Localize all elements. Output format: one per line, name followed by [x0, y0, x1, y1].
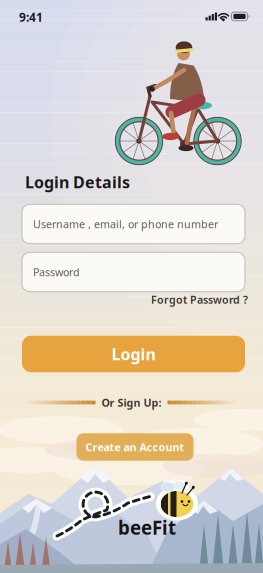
staticText: Password — [33, 265, 80, 279]
staticText: Login Details — [25, 171, 130, 193]
staticText: Or Sign Up: — [101, 395, 161, 410]
button[interactable]: Create an Account — [76, 433, 193, 461]
staticText: beeFit — [118, 515, 176, 540]
staticText: Forgot Password ? — [151, 292, 248, 307]
staticText: 9:41 — [19, 9, 43, 25]
button[interactable]: Forgot Password ? — [151, 292, 248, 307]
button[interactable]: Login — [22, 336, 245, 372]
button[interactable]: Username , email, or phone number — [22, 204, 245, 244]
button[interactable]: Password — [22, 252, 245, 292]
staticText: Username , email, or phone number — [33, 217, 218, 231]
staticText: Create an Account — [85, 440, 184, 454]
staticText: Login — [111, 343, 155, 365]
